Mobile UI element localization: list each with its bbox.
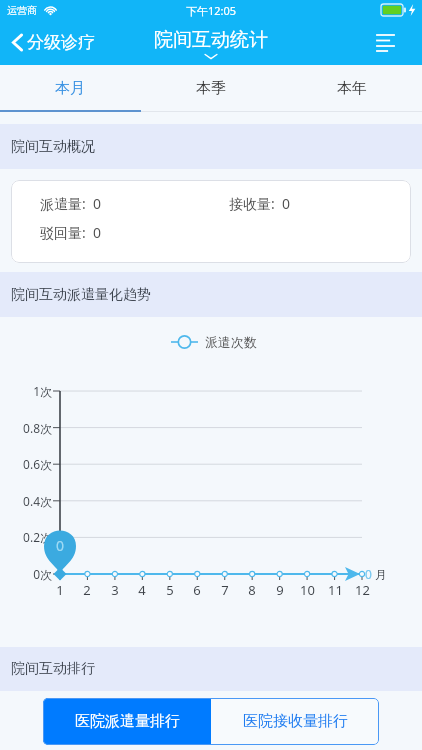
staticText: 驳回量: 0 [40,223,102,242]
staticText: 医院接收量排行 [243,712,348,731]
button[interactable]: 医院派遣量排行 [43,698,211,745]
staticText: 12 [355,581,370,599]
staticText: 下午12:05 [186,3,237,18]
staticText: 0.4次 [23,493,52,509]
staticText: 运营商 [7,4,37,17]
staticText: 派遣次数 [205,334,257,350]
staticText: 月 [375,567,387,582]
staticText: 接收量: 0 [229,194,291,213]
staticText: 院间互动概况 [11,138,95,156]
staticText: 本月 [55,79,85,98]
staticText: 0 [365,566,372,582]
staticText: 0 [56,536,65,555]
staticText: 分级诊疗 [27,32,95,53]
staticText: 派遣量: 0 [40,194,229,213]
staticText: 1 [56,581,64,599]
staticText: 8 [248,581,256,599]
staticText: 本季 [196,79,226,98]
button[interactable]: 分级诊疗 [0,24,105,61]
button[interactable]: Menu [359,22,422,63]
staticText: 1次 [33,383,52,399]
staticText: 2 [83,581,91,599]
staticText: 医院派遣量排行 [75,712,180,731]
staticText: 4 [138,581,146,599]
staticText: 院间互动派遣量化趋势 [11,286,151,304]
staticText: 0.2次 [23,529,52,545]
staticText: 0次 [33,566,52,582]
staticText: 6 [193,581,201,599]
staticText: 本年 [337,79,367,98]
button[interactable]: 医院接收量排行 [211,698,379,745]
staticText: 10 [300,581,315,599]
button[interactable]: 本季 [140,65,281,112]
button[interactable]: 本年 [281,65,422,112]
staticText: 7 [221,581,229,599]
staticText: 9 [276,581,284,599]
staticText: 0.8次 [23,420,52,436]
staticText: 0.6次 [23,456,52,472]
staticText: 5 [166,581,174,599]
staticText: 11 [328,581,343,599]
staticText: 3 [111,581,119,599]
staticText: 院间互动统计 [154,28,268,52]
staticText: 院间互动排行 [11,660,95,678]
button[interactable]: 院间互动统计 [154,28,268,59]
button[interactable]: 本月 [0,65,140,112]
